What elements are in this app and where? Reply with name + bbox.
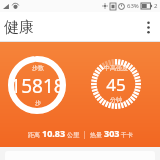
staticText: 45 [106, 73, 126, 96]
staticText: 步数 [32, 64, 44, 72]
staticText: 中高强度 [104, 64, 128, 72]
button[interactable]: More options [136, 15, 160, 39]
staticText: 15818 [10, 73, 65, 99]
staticText: 步 [35, 99, 41, 107]
staticText: 公里 [67, 131, 79, 139]
staticText: 63% [127, 2, 139, 10]
staticText: 303 [104, 127, 120, 139]
button[interactable]: 步数 [0, 42, 160, 147]
staticText: 2 [154, 2, 158, 10]
staticText: 10.83 [42, 127, 66, 139]
staticText: 千卡 [121, 131, 133, 139]
staticText: 距离 [28, 131, 40, 139]
staticText: 热量 [90, 131, 102, 139]
staticText: 健康 [4, 18, 34, 37]
staticText: 分钟 [110, 96, 122, 104]
